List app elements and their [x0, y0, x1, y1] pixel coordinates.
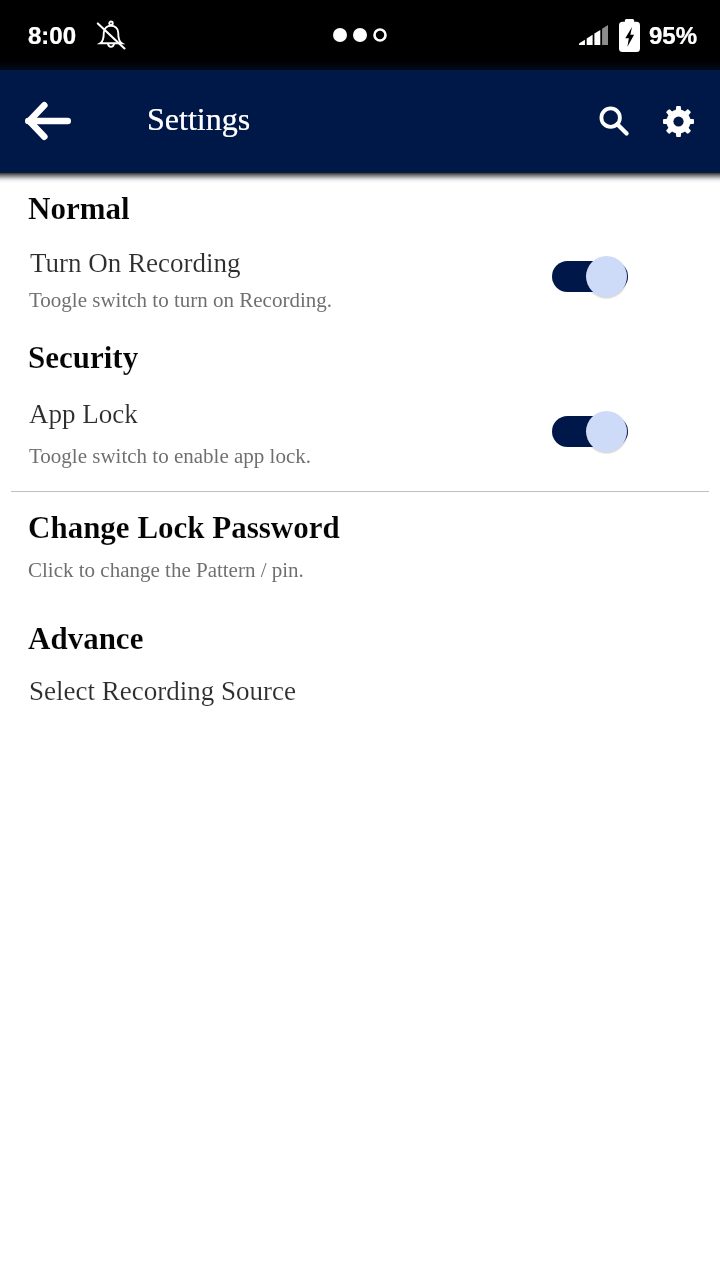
button[interactable]: Turn on recording toggle, on: [544, 251, 634, 301]
staticText: Settings: [147, 101, 251, 136]
staticText: Toogle switch to enable app lock.: [29, 444, 311, 467]
staticText: Advance: [28, 621, 144, 655]
staticText: Click to change the Pattern / pin.: [28, 558, 304, 581]
staticText: App Lock: [29, 399, 138, 429]
button[interactable]: App Lock: [0, 392, 720, 474]
button[interactable]: Change Lock Password: [0, 502, 720, 586]
staticText: 95%: [649, 22, 698, 49]
staticText: Turn On Recording: [30, 248, 241, 278]
button[interactable]: Turn On Recording: [0, 240, 720, 320]
button[interactable]: Back: [0, 70, 96, 172]
button[interactable]: Select Recording Source: [0, 666, 720, 716]
staticText: 8:00: [28, 22, 77, 49]
staticText: Normal: [28, 191, 130, 225]
staticText: Security: [28, 340, 139, 374]
button[interactable]: App lock toggle, on: [544, 406, 634, 456]
staticText: Change Lock Password: [28, 510, 340, 544]
button[interactable]: Settings: [650, 70, 706, 172]
staticText: Select Recording Source: [29, 676, 296, 706]
button[interactable]: Search: [578, 70, 650, 172]
staticText: Toogle switch to turn on Recording.: [29, 288, 332, 311]
